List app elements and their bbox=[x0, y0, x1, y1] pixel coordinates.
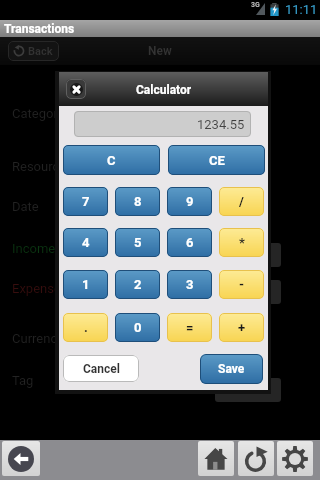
button[interactable]: Back bbox=[8, 41, 59, 61]
button[interactable]: 9 bbox=[167, 187, 212, 216]
button[interactable]: 8 bbox=[115, 187, 160, 216]
button[interactable]: C bbox=[63, 145, 160, 175]
button[interactable]: CE bbox=[168, 145, 265, 175]
button[interactable]: Save bbox=[200, 354, 263, 384]
staticText: Expense bbox=[12, 281, 61, 296]
staticText: Back bbox=[28, 45, 53, 58]
staticText: 8 bbox=[134, 194, 142, 209]
staticText: Date bbox=[12, 199, 39, 214]
button[interactable]: 0 bbox=[115, 313, 160, 342]
staticText: + bbox=[238, 320, 246, 335]
button[interactable]: Cancel bbox=[63, 355, 139, 382]
staticText: Currency bbox=[12, 331, 64, 346]
staticText: Income bbox=[12, 241, 56, 256]
button[interactable]: 6 bbox=[167, 228, 212, 257]
button[interactable]: = bbox=[167, 313, 212, 342]
staticText: / bbox=[239, 194, 244, 209]
staticText: New bbox=[148, 44, 172, 58]
staticText: Cancel bbox=[83, 362, 120, 376]
staticText: C bbox=[107, 153, 116, 168]
staticText: = bbox=[186, 320, 194, 335]
staticText: Save bbox=[218, 362, 245, 376]
staticText: Calculator bbox=[136, 83, 192, 97]
staticText: - bbox=[239, 277, 245, 292]
staticText: 1234.55 bbox=[197, 117, 245, 132]
button[interactable]: Refresh bbox=[238, 441, 274, 476]
button[interactable]: 2 bbox=[115, 270, 160, 299]
staticText: * bbox=[239, 235, 245, 250]
staticText: 1 bbox=[82, 277, 90, 292]
staticText: Tag bbox=[12, 373, 34, 388]
staticText: Resource bbox=[12, 159, 67, 174]
button[interactable]: Settings bbox=[277, 441, 313, 476]
button[interactable]: - bbox=[219, 270, 264, 299]
button[interactable]: + bbox=[219, 313, 264, 342]
button[interactable]: Close bbox=[66, 79, 86, 99]
button[interactable]: 5 bbox=[115, 228, 160, 257]
button[interactable]: . bbox=[63, 313, 108, 342]
staticText: 2 bbox=[134, 277, 142, 292]
button[interactable]: 1 bbox=[63, 270, 108, 299]
staticText: 3G bbox=[251, 1, 260, 9]
staticText: 5 bbox=[134, 235, 142, 250]
staticText: 3 bbox=[186, 277, 194, 292]
button[interactable]: 4 bbox=[63, 228, 108, 257]
staticText: 6 bbox=[186, 235, 194, 250]
button[interactable]: Home bbox=[198, 441, 234, 476]
staticText: 0 bbox=[134, 320, 142, 335]
staticText: Category bbox=[12, 106, 65, 121]
button[interactable]: / bbox=[219, 187, 264, 216]
button[interactable]: Back bbox=[2, 441, 40, 476]
staticText: 9 bbox=[186, 194, 194, 209]
staticText: . bbox=[84, 320, 88, 335]
staticText: 4 bbox=[82, 235, 90, 250]
button[interactable]: 7 bbox=[63, 187, 108, 216]
staticText: CE bbox=[209, 153, 225, 168]
staticText: 11:11 bbox=[285, 2, 318, 17]
button[interactable]: * bbox=[219, 228, 264, 257]
staticText: Transactions bbox=[4, 22, 75, 36]
staticText: 7 bbox=[82, 194, 90, 209]
button[interactable]: 3 bbox=[167, 270, 212, 299]
